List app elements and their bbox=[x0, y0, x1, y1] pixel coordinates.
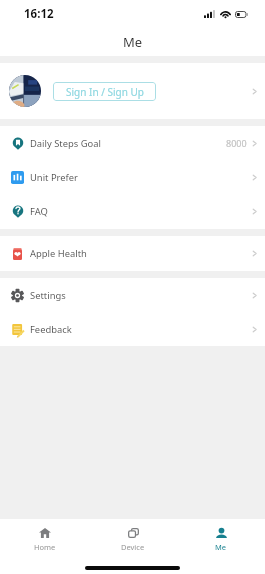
staticText: Settings bbox=[30, 289, 66, 302]
staticText: Home bbox=[34, 542, 56, 552]
staticText: Apple Health bbox=[30, 247, 87, 260]
button[interactable]: Home bbox=[0, 528, 89, 552]
staticText: FAQ bbox=[30, 205, 48, 218]
button[interactable]: Settings bbox=[0, 278, 265, 312]
button[interactable]: Me bbox=[177, 528, 265, 552]
staticText: 8000 bbox=[226, 137, 247, 149]
staticText: Unit Prefer bbox=[30, 171, 78, 184]
button[interactable]: Unit Prefer bbox=[0, 160, 265, 194]
button[interactable]: Device bbox=[89, 528, 177, 552]
staticText: Feedback bbox=[30, 323, 72, 336]
staticText: Device bbox=[121, 542, 145, 552]
button[interactable]: Feedback bbox=[0, 312, 265, 346]
button[interactable]: Sign In / Sign Up bbox=[0, 63, 265, 119]
staticText: Daily Steps Goal bbox=[30, 137, 101, 150]
staticText: 16:12 bbox=[24, 6, 54, 22]
staticText: Sign In / Sign Up bbox=[66, 85, 144, 99]
staticText: Me bbox=[215, 542, 227, 552]
button[interactable]: FAQ bbox=[0, 194, 265, 228]
staticText: Me bbox=[123, 33, 143, 51]
button[interactable]: Apple Health bbox=[0, 236, 265, 270]
button[interactable]: Sign In / Sign Up bbox=[53, 82, 156, 101]
button[interactable]: Daily Steps Goal bbox=[0, 126, 265, 160]
